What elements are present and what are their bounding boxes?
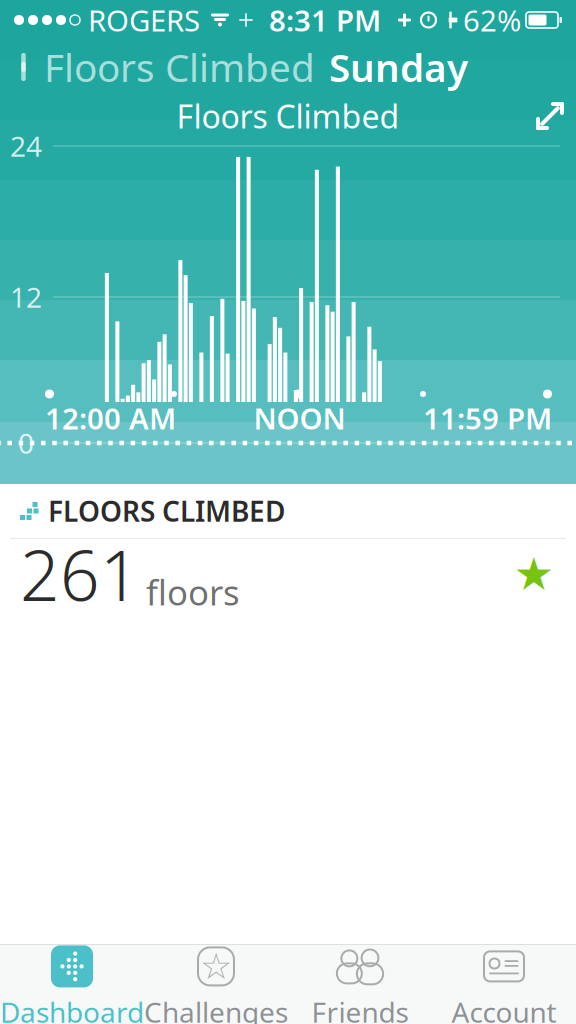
staticText: ☆ [200, 946, 232, 987]
staticText: 12 [10, 278, 42, 316]
staticText: Friends [311, 993, 408, 1024]
staticText: NOON [253, 398, 345, 437]
button[interactable]: Account [432, 945, 576, 1024]
staticText: Floors Climbed [176, 95, 399, 137]
staticText: 24 [10, 127, 42, 165]
staticText: Floors Climbed [44, 41, 315, 93]
button[interactable]: Friends [288, 945, 432, 1024]
button[interactable]: 261 [0, 539, 576, 609]
staticText: 11:59 PM [423, 398, 552, 437]
staticText: Dashboard [0, 993, 144, 1024]
staticText: ROGERS [88, 0, 200, 39]
button[interactable]: Floors Climbed [0, 33, 315, 101]
button[interactable]: Dashboard [0, 945, 144, 1024]
staticText: ★ [513, 548, 554, 600]
staticText: 12:00 AM [45, 398, 176, 437]
staticText: Account [451, 993, 556, 1024]
staticText: FLOORS CLIMBED [48, 492, 285, 530]
staticText: 0 [18, 424, 34, 462]
staticText: floors [146, 569, 240, 615]
button[interactable]: Expand chart [524, 90, 576, 142]
staticText: Challenges [144, 993, 288, 1024]
button[interactable]: ☆ [144, 945, 288, 1024]
staticText: Sunday [329, 41, 468, 93]
staticText: 261 [20, 528, 140, 620]
staticText: 62% [463, 0, 521, 39]
staticText: 8:31 PM [269, 0, 381, 39]
